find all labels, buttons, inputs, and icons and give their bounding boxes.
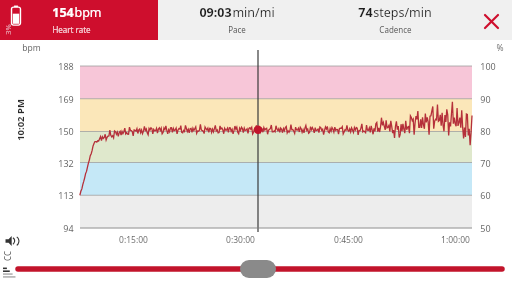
staticText: 100 [480,60,496,72]
staticText: 150 [58,125,74,137]
button[interactable]: 74 [295,0,495,40]
staticText: 94 [63,222,74,234]
staticText: 3% [3,24,13,35]
staticText: 0:30:00 [226,234,255,246]
staticText: min/mi [232,4,275,21]
button[interactable]: Close [476,6,506,36]
staticText: 169 [58,93,74,105]
button[interactable]: Signal [3,266,16,279]
staticText: % [496,42,504,54]
staticText: 113 [58,189,74,201]
staticText: 74 [358,4,373,21]
staticText: bpm [22,42,41,54]
staticText: steps/min [373,4,432,21]
staticText: Pace [228,24,246,35]
button[interactable]: Scrub position [0,256,512,284]
staticText: bpm [74,4,102,21]
staticText: 0:15:00 [119,234,148,246]
staticText: 1:00:00 [441,234,470,246]
staticText: 09:03 [199,4,232,21]
staticText: 10:02 PM [14,99,27,141]
staticText: CC [2,251,13,261]
staticText: 188 [58,60,74,72]
button[interactable]: Scrub position [240,260,276,278]
staticText: 154 [52,4,74,21]
staticText: 50 [480,222,491,234]
staticText: 80 [480,125,491,137]
staticText: 60 [480,189,491,201]
button[interactable]: 154 [0,0,158,40]
button[interactable]: Volume [3,234,17,248]
staticText: 0:45:00 [334,234,363,246]
staticText: Cadence [379,24,412,35]
staticText: Heart rate [52,24,91,35]
staticText: 70 [480,157,491,169]
button[interactable]: 09:03 [137,0,337,40]
staticText: 132 [58,157,74,169]
staticText: 90 [480,93,491,105]
